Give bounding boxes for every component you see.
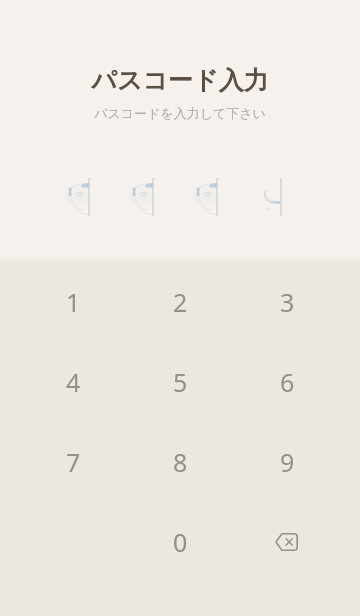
staticText: 6 <box>280 365 295 399</box>
button[interactable]: 2 <box>127 262 234 342</box>
staticText: パスコード入力 <box>91 65 269 96</box>
staticText: 8 <box>173 445 188 479</box>
staticText: 1 <box>66 285 81 319</box>
staticText: 0 <box>173 525 188 559</box>
button[interactable]: 4 <box>20 342 127 422</box>
staticText: 3 <box>280 285 295 319</box>
staticText: 4 <box>66 365 81 399</box>
button[interactable]: 6 <box>234 342 341 422</box>
staticText: 7 <box>66 445 81 479</box>
button[interactable]: 3 <box>234 262 341 342</box>
button[interactable]: 1 <box>20 262 127 342</box>
staticText: 9 <box>280 445 295 479</box>
button[interactable]: 5 <box>127 342 234 422</box>
button[interactable]: 0 <box>127 502 234 582</box>
button[interactable]: Delete <box>234 502 341 582</box>
staticText: 5 <box>173 365 188 399</box>
staticText: パスコードを入力して下さい <box>94 105 266 121</box>
staticText: 2 <box>173 285 188 319</box>
button[interactable]: 7 <box>20 422 127 502</box>
button[interactable]: 9 <box>234 422 341 502</box>
button[interactable]: 8 <box>127 422 234 502</box>
